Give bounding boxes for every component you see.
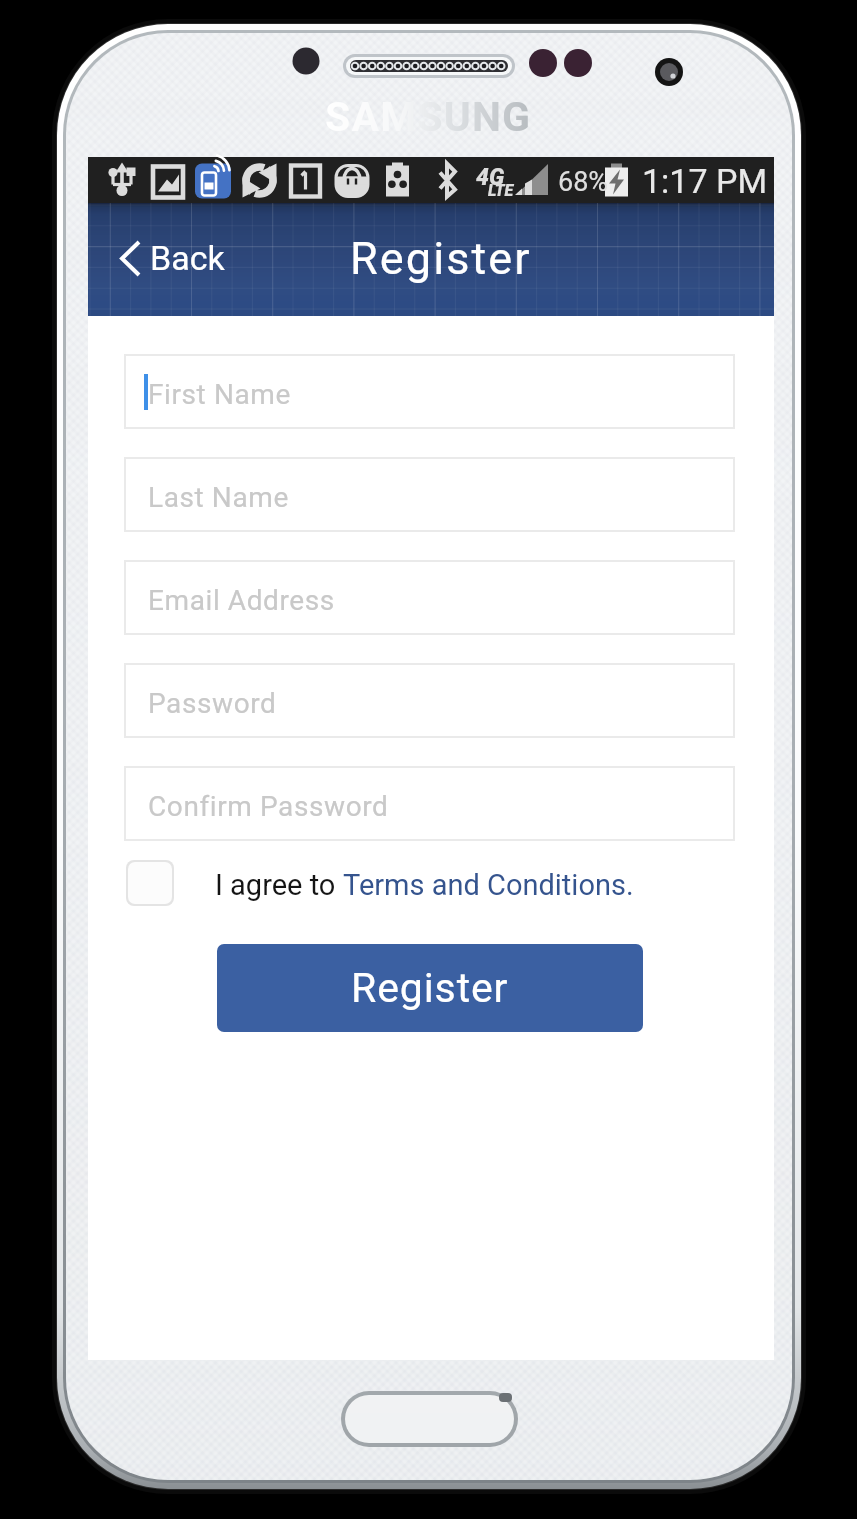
staticText: Register xyxy=(350,232,532,285)
button[interactable]: First Name xyxy=(125,355,734,428)
staticText: Email Address xyxy=(148,584,335,617)
other: Agree to terms checkbox xyxy=(128,862,172,904)
staticText: Back xyxy=(150,238,225,278)
button[interactable]: Register xyxy=(217,944,643,1032)
staticText: Register xyxy=(351,964,509,1012)
staticText: 1:17 PM xyxy=(642,161,768,201)
staticText: I agree to xyxy=(215,868,343,902)
staticText: Password xyxy=(148,687,277,720)
button[interactable]: Agree to terms checkbox xyxy=(126,860,174,906)
staticText: Confirm Password xyxy=(148,790,389,823)
button[interactable]: Back xyxy=(108,228,237,288)
staticText: SAMSUNG xyxy=(325,93,532,141)
button[interactable]: Last Name xyxy=(125,458,734,531)
button[interactable]: Terms and Conditions. xyxy=(343,868,634,902)
staticText: LTE xyxy=(488,181,514,200)
button[interactable]: Email Address xyxy=(125,561,734,634)
staticText: 68% xyxy=(558,166,609,198)
staticText: 4G xyxy=(476,164,505,191)
staticText: First Name xyxy=(148,378,291,411)
button[interactable]: Password xyxy=(125,664,734,737)
button[interactable]: Confirm Password xyxy=(125,767,734,840)
staticText: Last Name xyxy=(148,481,289,514)
